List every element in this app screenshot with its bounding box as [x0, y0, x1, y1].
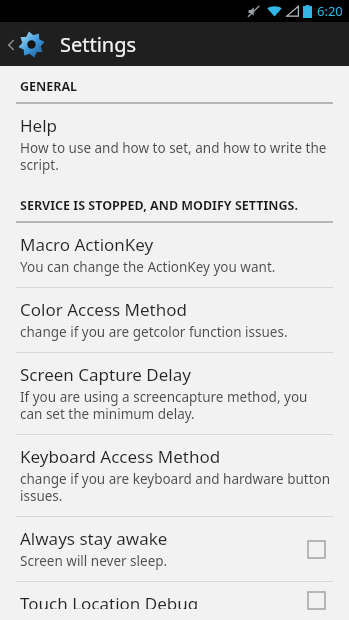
button[interactable]: Screen Capture Delay — [0, 353, 349, 434]
button[interactable]: Color Access Method — [0, 288, 349, 352]
staticText: change if you are getcolor function issu… — [20, 323, 288, 341]
staticText: change if you are keyboard and hardware … — [20, 470, 333, 505]
staticText: Always stay awake — [20, 527, 168, 550]
button[interactable]: Touch Location Debug — [0, 582, 349, 620]
staticText: Help — [20, 114, 58, 137]
staticText: 6:20 — [317, 2, 343, 20]
staticText: Macro ActionKey — [20, 233, 154, 256]
button[interactable]: Keyboard Access Method — [0, 435, 349, 516]
staticText: Touch Location Debug — [20, 592, 199, 609]
button[interactable]: Help — [0, 104, 349, 185]
staticText: If you are using a screencapture method,… — [20, 388, 333, 423]
staticText: Keyboard Access Method — [20, 445, 221, 468]
staticText: Color Access Method — [20, 298, 188, 321]
staticText: GENERAL — [20, 78, 78, 95]
staticText: How to use and how to set, and how to wr… — [20, 139, 333, 174]
staticText: Screen Capture Delay — [20, 363, 191, 386]
button[interactable]: Macro ActionKey — [0, 223, 349, 287]
button[interactable]: Always stay awake checkbox — [299, 532, 333, 566]
staticText: Settings — [60, 31, 137, 58]
staticText: You can change the ActionKey you want. — [20, 258, 276, 276]
staticText: Screen will never sleep. — [20, 552, 168, 570]
button[interactable]: Navigate up — [0, 25, 49, 64]
button[interactable]: Always stay awake — [0, 517, 349, 581]
staticText: SERVICE IS STOPPED, AND MODIFY SETTINGS. — [20, 197, 298, 214]
button[interactable]: Touch Location Debug checkbox — [299, 592, 333, 609]
